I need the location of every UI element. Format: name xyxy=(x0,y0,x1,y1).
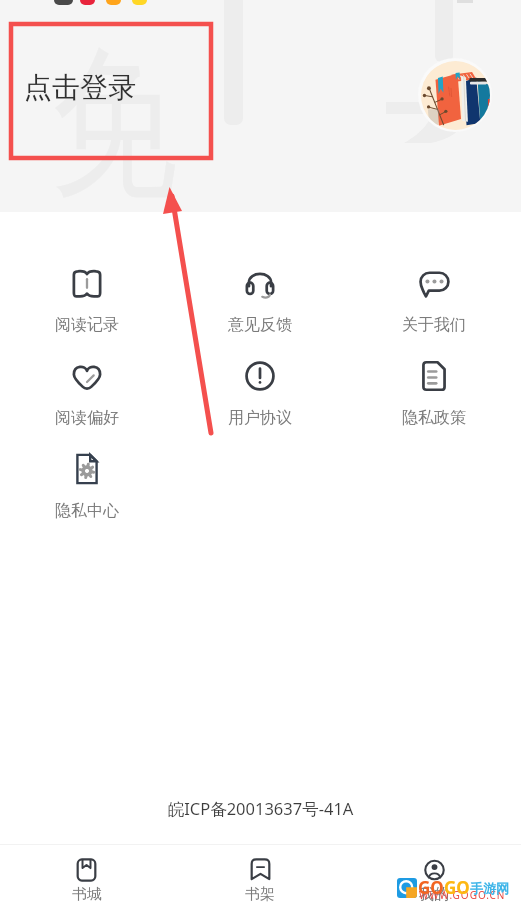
staticText: 皖ICP备20013637号-41A xyxy=(0,797,521,820)
button[interactable]: 用户协议 xyxy=(173,359,347,452)
staticText: WWW.GOGO.CN xyxy=(419,888,506,902)
button[interactable]: 我的 xyxy=(347,845,521,911)
staticText: 阅读偏好 xyxy=(55,408,119,428)
button[interactable]: 阅读偏好 xyxy=(0,359,173,452)
button[interactable]: 书架 xyxy=(173,845,347,911)
button[interactable]: 意见反馈 xyxy=(173,266,347,359)
staticText: 关于我们 xyxy=(402,315,466,335)
staticText: GO xyxy=(444,876,470,899)
button[interactable]: 点击登录 xyxy=(24,70,136,105)
staticText: 书城 xyxy=(72,885,102,904)
staticText: 书架 xyxy=(245,885,275,904)
staticText: 隐私政策 xyxy=(402,408,466,428)
staticText: 手游网 xyxy=(470,880,509,896)
staticText: 用户协议 xyxy=(228,408,292,428)
staticText: GO xyxy=(418,876,444,899)
staticText: 意见反馈 xyxy=(228,315,292,335)
button[interactable]: 关于我们 xyxy=(347,266,521,359)
button[interactable]: 隐私政策 xyxy=(347,359,521,452)
button[interactable]: 阅读记录 xyxy=(0,266,173,359)
staticText: 免 xyxy=(51,23,177,210)
button[interactable]: 隐私中心 xyxy=(0,452,173,545)
button[interactable]: 书城 xyxy=(0,845,173,911)
staticText: 隐私中心 xyxy=(55,501,119,521)
staticText: 阅读记录 xyxy=(55,315,119,335)
staticText: 我的 xyxy=(419,885,449,904)
button[interactable]: Profile avatar xyxy=(418,58,492,132)
